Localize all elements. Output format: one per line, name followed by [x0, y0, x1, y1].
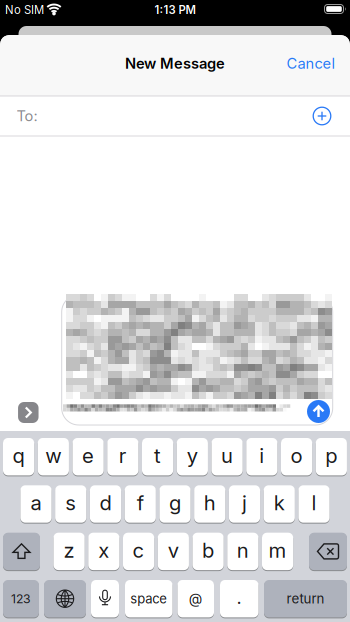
button[interactable]: Numbers — [3, 579, 39, 618]
staticText: l — [311, 491, 316, 515]
button[interactable]: c — [123, 532, 154, 571]
button[interactable]: Expand — [18, 402, 39, 423]
staticText: y — [187, 444, 198, 468]
button[interactable]: d — [90, 485, 121, 523]
staticText: d — [99, 491, 111, 515]
staticText: i — [259, 444, 264, 468]
staticText: e — [82, 444, 94, 468]
button[interactable]: space — [125, 579, 172, 618]
button[interactable]: Send — [307, 400, 330, 423]
staticText: To: — [16, 107, 37, 125]
button[interactable]: s — [55, 485, 86, 523]
button[interactable]: l — [298, 485, 330, 523]
staticText: q — [13, 444, 25, 468]
button[interactable]: Dictate — [91, 579, 119, 618]
button[interactable]: z — [53, 532, 85, 571]
staticText: b — [202, 538, 214, 562]
staticText: j — [242, 491, 247, 515]
button[interactable]: e — [72, 437, 104, 476]
button[interactable]: v — [158, 532, 189, 571]
staticText: f — [137, 491, 144, 515]
button[interactable]: w — [38, 437, 69, 476]
staticText: a — [30, 491, 41, 515]
staticText: s — [65, 491, 76, 515]
button[interactable]: p — [316, 437, 347, 476]
button[interactable]: o — [281, 437, 312, 476]
button[interactable]: q — [3, 437, 34, 476]
button[interactable]: u — [211, 437, 243, 476]
staticText: New Message — [125, 55, 225, 72]
staticText: x — [98, 538, 109, 562]
button[interactable]: j — [229, 485, 260, 523]
staticText: p — [325, 444, 337, 468]
button[interactable]: b — [192, 532, 224, 571]
button[interactable]: t — [142, 437, 173, 476]
button[interactable]: y — [177, 437, 208, 476]
staticText: 123 — [11, 591, 31, 606]
button[interactable]: f — [125, 485, 156, 523]
staticText: c — [133, 538, 145, 562]
button[interactable]: Cancel — [286, 55, 335, 72]
staticText: return — [286, 591, 324, 606]
button[interactable]: x — [88, 532, 119, 571]
button[interactable]: . — [220, 579, 258, 618]
button[interactable]: Add Contact — [313, 107, 331, 125]
staticText: m — [269, 538, 287, 562]
button[interactable]: m — [262, 532, 293, 571]
button[interactable]: return — [264, 579, 347, 618]
button[interactable]: Next keyboard — [44, 579, 86, 618]
staticText: space — [130, 591, 167, 606]
staticText: . — [237, 590, 242, 607]
staticText: No SIM — [5, 3, 44, 17]
button[interactable]: r — [107, 437, 138, 476]
staticText: w — [45, 444, 61, 468]
staticText: 1:13 PM — [154, 3, 195, 17]
staticText: k — [274, 491, 285, 515]
button[interactable]: Delete — [309, 532, 347, 571]
staticText: g — [169, 491, 181, 515]
staticText: n — [237, 538, 249, 562]
button[interactable]: @ — [177, 579, 214, 618]
staticText: @ — [189, 590, 203, 607]
staticText: z — [64, 538, 75, 562]
button[interactable]: Shift — [3, 532, 40, 571]
staticText: h — [204, 491, 216, 515]
button[interactable]: a — [20, 485, 52, 523]
staticText: u — [221, 444, 233, 468]
button[interactable]: k — [264, 485, 295, 523]
staticText: r — [119, 444, 127, 468]
staticText: t — [154, 444, 161, 468]
staticText: Cancel — [286, 55, 335, 72]
button[interactable]: g — [159, 485, 191, 523]
button[interactable]: h — [194, 485, 225, 523]
button[interactable]: n — [227, 532, 258, 571]
staticText: v — [168, 538, 179, 562]
button[interactable]: i — [246, 437, 277, 476]
staticText: o — [291, 444, 303, 468]
